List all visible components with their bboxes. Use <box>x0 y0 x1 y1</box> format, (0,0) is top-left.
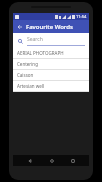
button[interactable]: AERIAL PHOTOGRAPH <box>13 48 89 58</box>
other: Search <box>17 38 24 45</box>
button[interactable]: Caisson <box>13 70 89 80</box>
staticText: AERIAL PHOTOGRAPH <box>17 50 64 56</box>
button[interactable]: Back <box>13 20 26 33</box>
staticText: Favourite Words <box>26 23 73 31</box>
staticText: 11:54 <box>76 14 87 19</box>
button[interactable]: Search <box>13 33 89 48</box>
staticText: Centering <box>17 61 38 67</box>
button[interactable]: Home <box>46 155 57 166</box>
button[interactable]: Artesian well <box>13 81 89 91</box>
button[interactable]: Back <box>24 155 35 166</box>
staticText: Artesian well <box>17 83 45 89</box>
staticText: Caisson <box>17 72 34 78</box>
staticText: Search <box>27 36 43 43</box>
button[interactable]: Centering <box>13 59 89 69</box>
button[interactable]: Recent apps <box>67 155 78 166</box>
